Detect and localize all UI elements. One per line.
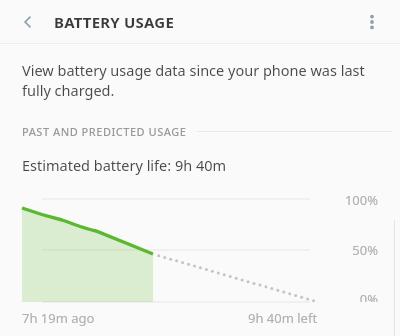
staticText: 50% <box>318 241 378 259</box>
staticText: 7h 19m ago <box>22 309 95 327</box>
staticText: 100% <box>318 191 378 209</box>
staticText: BATTERY USAGE <box>54 12 174 32</box>
staticText: Estimated battery life: 9h 40m <box>22 155 227 175</box>
staticText: 0% <box>318 290 378 302</box>
button[interactable]: Back <box>14 8 42 36</box>
staticText: View battery usage data since your phone… <box>22 60 366 100</box>
staticText: PAST AND PREDICTED USAGE <box>22 124 187 139</box>
staticText: 9h 40m left <box>248 309 318 327</box>
button[interactable]: More options <box>356 6 388 38</box>
